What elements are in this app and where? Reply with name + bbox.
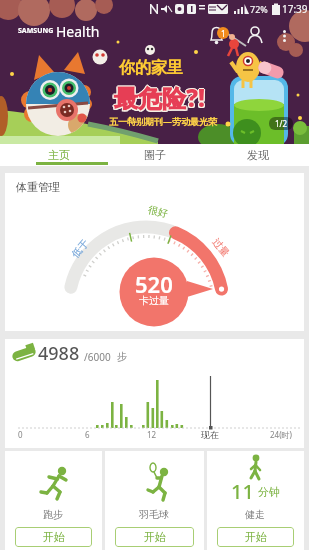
staticText: 你的家里 (119, 58, 183, 78)
staticText: 低于 (69, 237, 91, 260)
button[interactable]: 圈子 (103, 144, 206, 166)
staticText: 0 (18, 429, 23, 440)
staticText: 最危险?! (114, 80, 206, 113)
button[interactable]: 4988 (5, 339, 304, 448)
staticText: 1/2 (275, 118, 288, 129)
staticText: 发现 (247, 148, 269, 162)
staticText: 卡过量 (139, 294, 169, 307)
button[interactable]: 体重管理 (5, 173, 304, 331)
button[interactable] (243, 24, 269, 48)
button[interactable]: 跑步 (5, 451, 102, 550)
staticText: 步 (117, 350, 127, 363)
staticText: 健走 (245, 508, 265, 521)
staticText: 过量 (210, 236, 232, 259)
staticText: 五一特别期刊—劳动最光荣 (109, 115, 218, 127)
staticText: Health (56, 22, 100, 41)
staticText: 最危险?! (113, 82, 205, 115)
staticText: 4988 (38, 341, 80, 366)
staticText: 24(时) (270, 429, 292, 440)
button[interactable] (205, 24, 233, 48)
staticText: SAMSUNG (18, 26, 54, 36)
staticText: 1 (221, 28, 226, 39)
button[interactable]: 你的家里 (0, 0, 309, 144)
button[interactable] (274, 24, 296, 48)
staticText: 最危险?! (115, 81, 207, 114)
staticText: 很好 (147, 203, 169, 220)
staticText: 现在 (201, 429, 219, 440)
staticText: 最危险?! (115, 82, 207, 115)
button[interactable]: 羽毛球 (105, 451, 204, 550)
button[interactable]: 开始 (115, 527, 194, 547)
staticText: 72% (250, 3, 268, 15)
staticText: 体重管理 (16, 180, 60, 194)
staticText: 11 (231, 478, 254, 505)
button[interactable]: 开始 (217, 527, 294, 547)
staticText: 跑步 (43, 508, 63, 521)
staticText: 开始 (43, 530, 65, 544)
staticText: 最危险?! (114, 82, 206, 115)
staticText: 12 (147, 429, 157, 440)
staticText: 分钟 (258, 485, 280, 499)
staticText: /6000 (84, 350, 111, 364)
button[interactable]: 主页 (0, 144, 103, 166)
staticText: 520 (135, 269, 173, 299)
staticText: 6 (85, 429, 90, 440)
staticText: 开始 (245, 530, 267, 544)
staticText: 最危险?! (114, 81, 206, 114)
staticText: 开始 (144, 530, 166, 544)
staticText: 圈子 (144, 148, 166, 162)
staticText: 主页 (48, 148, 70, 162)
button[interactable]: 11 (207, 451, 304, 550)
button[interactable]: 开始 (15, 527, 92, 547)
staticText: 17:39 (282, 2, 308, 16)
staticText: 最危险?! (113, 81, 205, 114)
button[interactable]: 发现 (206, 144, 309, 166)
staticText: 羽毛球 (139, 508, 169, 521)
